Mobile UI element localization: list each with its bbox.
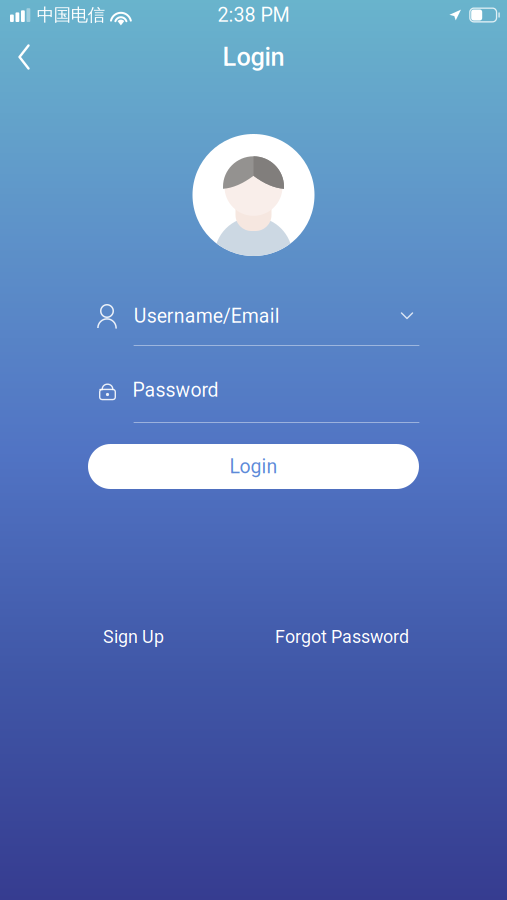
staticText: Sign Up	[103, 626, 164, 647]
button[interactable]: Back	[0, 34, 44, 80]
staticText: Login	[222, 42, 284, 72]
staticText: Forgot Password	[275, 626, 409, 647]
button[interactable]: Password	[87, 374, 419, 423]
staticText: 2:38 PM	[217, 3, 289, 26]
button[interactable]: Username/Email	[87, 300, 419, 346]
button[interactable]: Sign Up	[80, 622, 186, 652]
staticText: 中国电信	[37, 4, 105, 26]
button[interactable]: Login	[88, 444, 419, 489]
staticText: Login	[229, 455, 277, 478]
staticText: Username/Email	[134, 305, 280, 327]
staticText: Password	[133, 379, 219, 401]
button[interactable]: Forgot Password	[264, 622, 419, 652]
